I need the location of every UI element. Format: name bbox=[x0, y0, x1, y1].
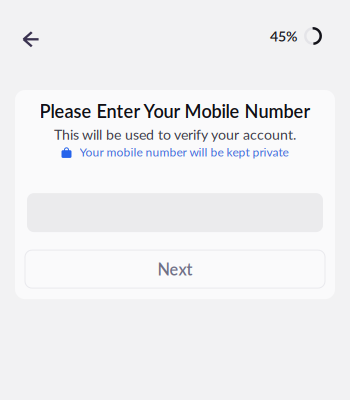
staticText: Please Enter Your Mobile Number bbox=[39, 100, 310, 122]
button[interactable]: Next bbox=[25, 250, 325, 288]
staticText: Your mobile number will be kept private bbox=[79, 145, 288, 159]
staticText: 45% bbox=[270, 27, 297, 44]
staticText: Next bbox=[157, 259, 192, 279]
staticText: This will be used to verify your account… bbox=[54, 126, 296, 143]
button[interactable]: Back bbox=[16, 23, 45, 55]
